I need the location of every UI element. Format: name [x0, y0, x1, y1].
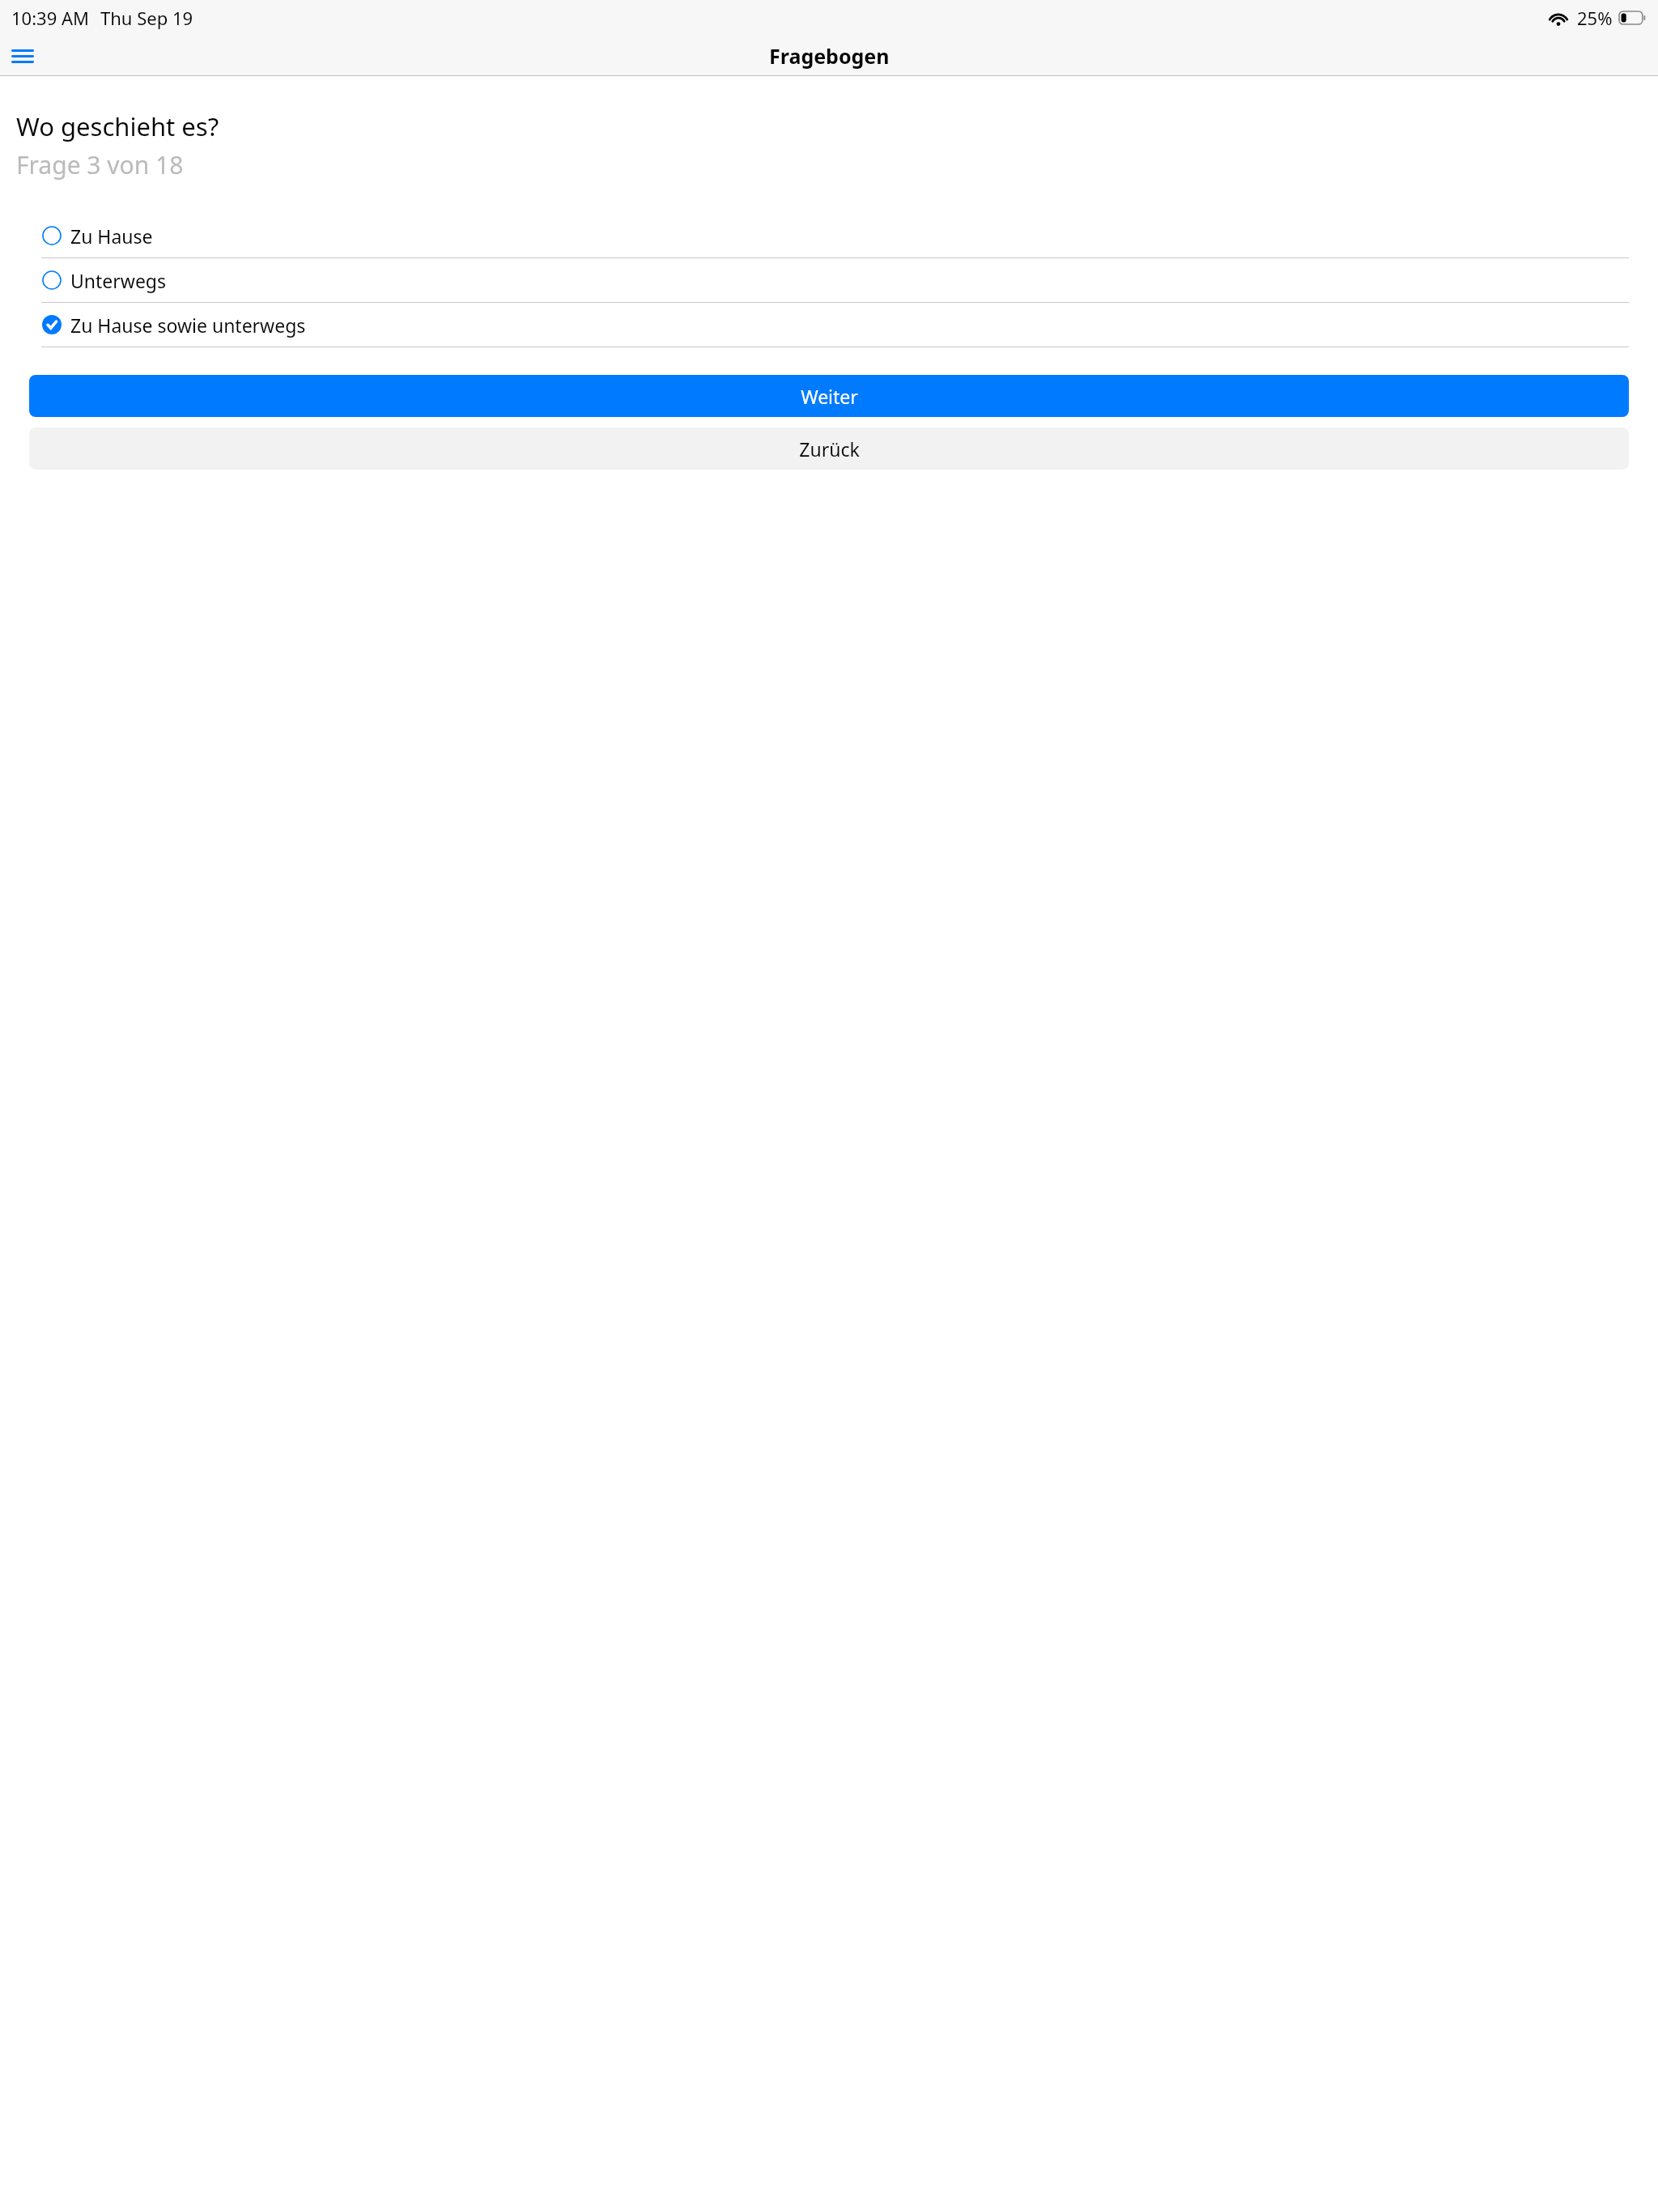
button[interactable]: Unterwegs — [0, 258, 1658, 303]
staticText: Wo geschieht es? — [16, 109, 219, 143]
staticText: Zu Hause — [70, 223, 153, 249]
staticText: Weiter — [801, 384, 858, 409]
button[interactable]: Zurück — [29, 428, 1629, 470]
staticText: 25% — [1577, 6, 1613, 30]
staticText: 10:39 AM — [11, 6, 89, 30]
staticText: Zu Hause sowie unterwegs — [70, 313, 306, 338]
staticText: Fragebogen — [769, 42, 890, 70]
staticText: Frage 3 von 18 — [16, 148, 184, 181]
button[interactable]: Menu — [0, 36, 45, 76]
staticText: Zurück — [799, 436, 860, 462]
button[interactable]: Zu Hause — [0, 214, 1658, 258]
button[interactable]: Zu Hause sowie unterwegs — [0, 303, 1658, 347]
staticText: Unterwegs — [70, 268, 167, 293]
button[interactable]: Weiter — [29, 375, 1629, 417]
staticText: Thu Sep 19 — [100, 6, 193, 30]
